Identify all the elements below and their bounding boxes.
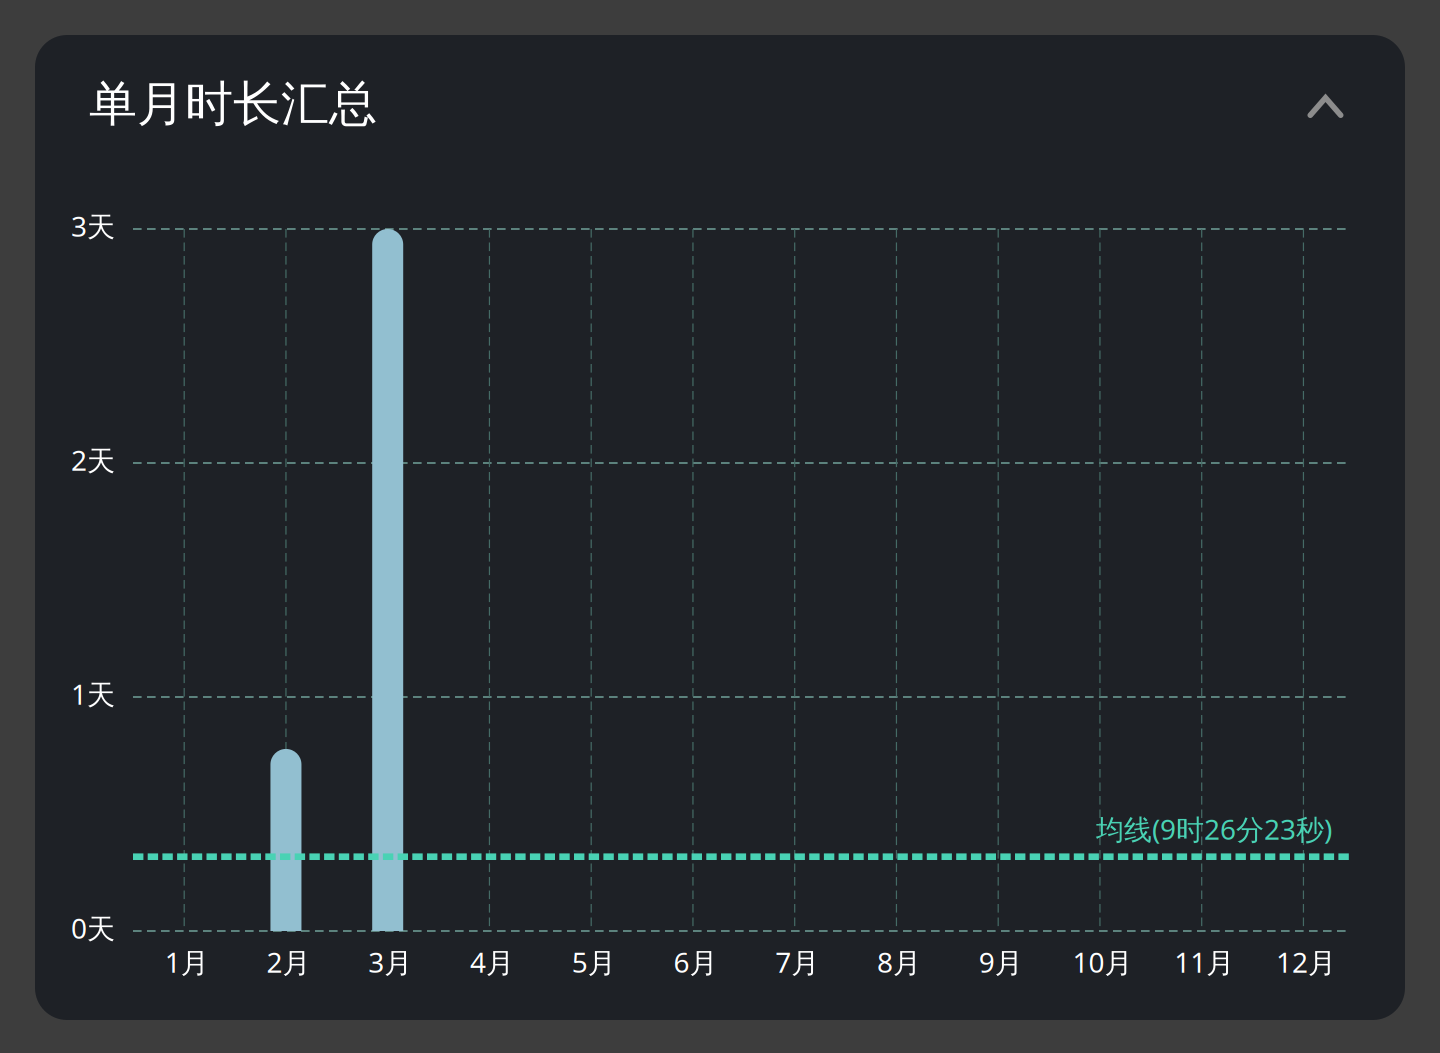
staticText: 3月: [368, 943, 412, 981]
staticText: 3天: [71, 207, 115, 245]
staticText: 12月: [1276, 943, 1336, 981]
staticText: 2月: [266, 943, 310, 981]
staticText: 均线(9时26分23秒): [1096, 810, 1332, 848]
staticText: 5月: [572, 943, 616, 981]
staticText: 1月: [165, 943, 209, 981]
button[interactable]: 单月时长汇总: [90, 35, 1370, 175]
staticText: 2天: [71, 441, 115, 479]
staticText: 6月: [673, 943, 717, 981]
staticText: 8月: [877, 943, 921, 981]
staticText: 0天: [71, 909, 115, 947]
staticText: 1天: [71, 675, 115, 713]
staticText: 9月: [979, 943, 1023, 981]
staticText: 4月: [470, 943, 514, 981]
staticText: 10月: [1072, 943, 1132, 981]
staticText: 11月: [1174, 943, 1234, 981]
staticText: 单月时长汇总: [89, 74, 377, 133]
staticText: 7月: [775, 943, 819, 981]
